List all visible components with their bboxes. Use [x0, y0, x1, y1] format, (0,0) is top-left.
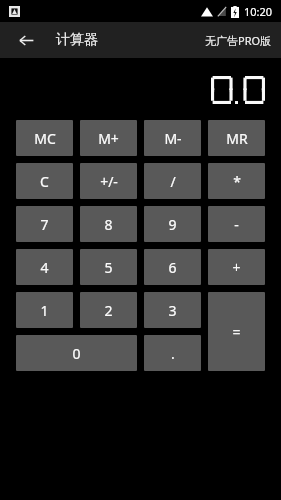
- staticText: 0: [72, 344, 81, 363]
- staticText: MC: [34, 129, 56, 148]
- staticText: .: [171, 344, 175, 363]
- staticText: M+: [98, 129, 119, 148]
- staticText: M-: [164, 129, 182, 148]
- button[interactable]: 1: [16, 292, 73, 328]
- staticText: 1: [40, 301, 49, 320]
- button[interactable]: M+: [80, 120, 137, 156]
- staticText: *: [233, 172, 241, 191]
- staticText: +/-: [100, 172, 118, 191]
- button[interactable]: 0: [16, 335, 137, 371]
- staticText: 2: [104, 301, 113, 320]
- button[interactable]: *: [208, 163, 265, 199]
- button[interactable]: C: [16, 163, 73, 199]
- staticText: C: [40, 172, 49, 191]
- staticText: 7: [40, 215, 49, 234]
- button[interactable]: MR: [208, 120, 265, 156]
- button[interactable]: 2: [80, 292, 137, 328]
- staticText: =: [232, 322, 241, 341]
- button[interactable]: MC: [16, 120, 73, 156]
- button[interactable]: .: [144, 335, 201, 371]
- button[interactable]: M-: [144, 120, 201, 156]
- staticText: -: [234, 215, 239, 234]
- button[interactable]: 4: [16, 249, 73, 285]
- staticText: /: [170, 172, 176, 191]
- button[interactable]: 9: [144, 206, 201, 242]
- staticText: 8: [104, 215, 113, 234]
- button[interactable]: 3: [144, 292, 201, 328]
- staticText: 计算器: [56, 31, 98, 49]
- button[interactable]: 6: [144, 249, 201, 285]
- button[interactable]: 7: [16, 206, 73, 242]
- staticText: MR: [226, 129, 248, 148]
- staticText: 4: [40, 258, 49, 277]
- button[interactable]: 无广告PRO版: [196, 27, 281, 54]
- button[interactable]: Back: [13, 27, 39, 53]
- button[interactable]: 8: [80, 206, 137, 242]
- staticText: 无广告PRO版: [205, 33, 272, 48]
- button[interactable]: -: [208, 206, 265, 242]
- staticText: 3: [168, 301, 177, 320]
- button[interactable]: /: [144, 163, 201, 199]
- staticText: 6: [168, 258, 177, 277]
- staticText: 5: [104, 258, 113, 277]
- staticText: +: [232, 258, 241, 277]
- staticText: 9: [168, 215, 177, 234]
- staticText: 10:20: [244, 4, 273, 19]
- button[interactable]: 5: [80, 249, 137, 285]
- button[interactable]: +: [208, 249, 265, 285]
- button[interactable]: =: [208, 292, 265, 371]
- button[interactable]: +/-: [80, 163, 137, 199]
